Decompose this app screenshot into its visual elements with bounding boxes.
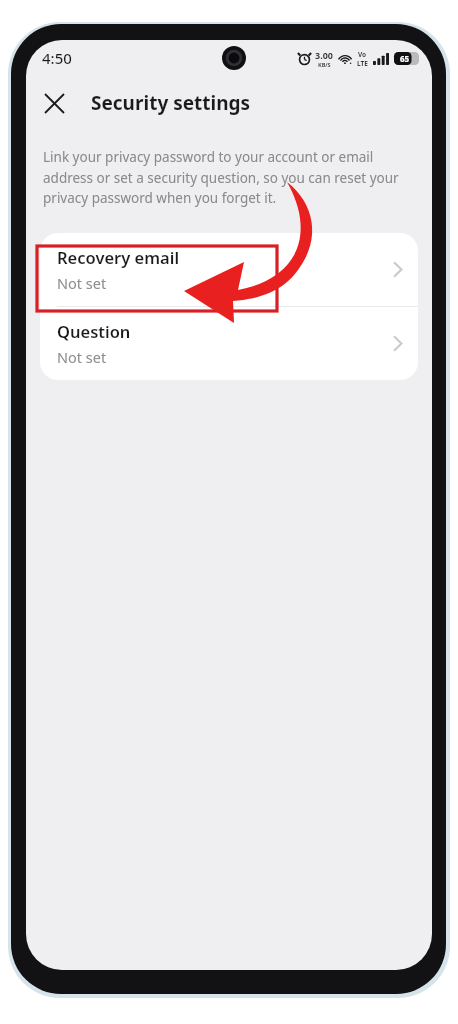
staticText: Not set [57, 347, 107, 367]
button[interactable]: Question [40, 307, 418, 380]
staticText: 65 [400, 53, 410, 64]
staticText: Question [57, 320, 131, 342]
staticText: KB/S [318, 61, 331, 68]
staticText: Not set [57, 273, 107, 293]
staticText: LTE [357, 59, 368, 68]
staticText: 4:50 [42, 48, 72, 68]
button[interactable]: Recovery email [40, 233, 418, 306]
staticText: Security settings [91, 90, 251, 116]
staticText: Vo [358, 50, 367, 59]
button[interactable]: Close [34, 83, 74, 123]
staticText: Recovery email [57, 246, 180, 268]
staticText: Link your privacy password to your accou… [43, 148, 418, 207]
staticText: 3.00 [315, 49, 333, 61]
